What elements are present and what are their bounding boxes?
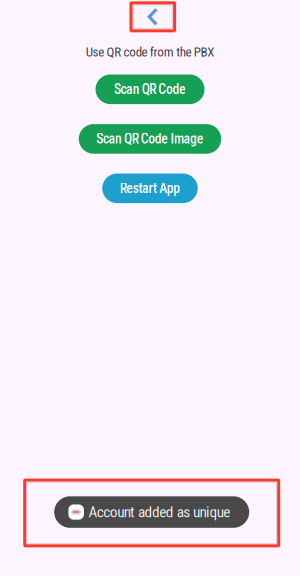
staticText: Restart App xyxy=(120,180,180,196)
staticText: Scan QR Code Image xyxy=(96,131,204,147)
staticText: Account added as unique xyxy=(88,503,230,521)
staticText: Use QR code from the PBX xyxy=(86,44,214,60)
button[interactable]: Scan QR Code Image xyxy=(79,124,221,154)
button[interactable]: Back xyxy=(133,4,173,29)
button[interactable]: Scan QR Code xyxy=(95,74,204,104)
staticText: Scan QR Code xyxy=(114,81,186,97)
button[interactable]: Restart App xyxy=(102,173,198,203)
